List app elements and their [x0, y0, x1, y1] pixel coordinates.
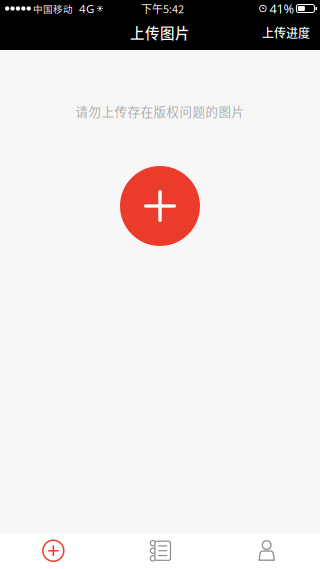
- button[interactable]: 上传进度: [252, 17, 320, 50]
- staticText: 请勿上传存在版权问题的图片: [75, 102, 244, 120]
- button[interactable]: 上传: [0, 532, 107, 569]
- button[interactable]: 我的: [213, 532, 320, 569]
- staticText: 上传图片: [130, 22, 190, 43]
- staticText: 41%: [269, 0, 294, 17]
- staticText: 下午5:42: [141, 1, 184, 16]
- staticText: 上传进度: [262, 24, 310, 41]
- staticText: 中国移动: [33, 1, 73, 15]
- staticText: 4G: [79, 1, 94, 16]
- button[interactable]: 添加图片: [120, 166, 200, 246]
- button[interactable]: 记录: [107, 532, 213, 569]
